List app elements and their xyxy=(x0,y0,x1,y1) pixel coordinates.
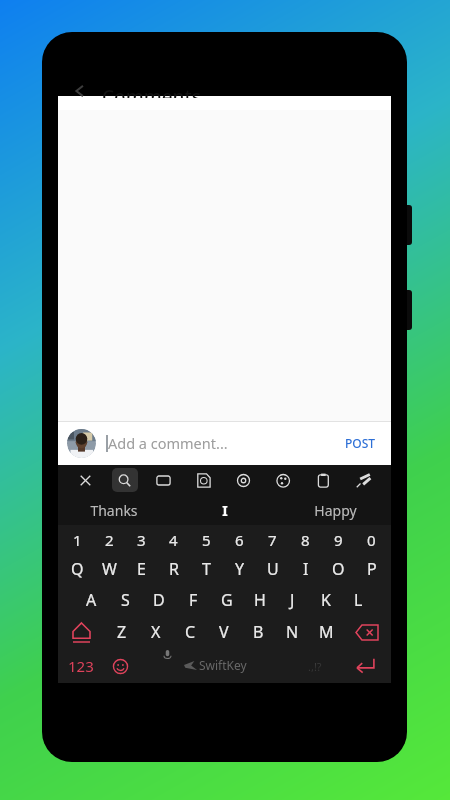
button[interactable]: F xyxy=(176,584,210,615)
staticText: 3 xyxy=(137,530,146,550)
staticText: L xyxy=(354,589,363,611)
button[interactable]: Settings xyxy=(223,465,263,495)
button[interactable]: 6 xyxy=(223,527,256,553)
button[interactable]: Happy xyxy=(280,495,391,525)
button[interactable]: B xyxy=(241,615,275,649)
staticText: J xyxy=(290,589,295,611)
button[interactable]: I xyxy=(289,553,322,584)
button[interactable]: Clipboard xyxy=(303,465,343,495)
button[interactable]: C xyxy=(173,615,207,649)
staticText: I xyxy=(222,501,228,520)
button[interactable]: Stickers xyxy=(183,465,223,495)
button[interactable]: 5 xyxy=(190,527,223,553)
button[interactable]: Search xyxy=(105,465,144,495)
staticText: U xyxy=(267,558,279,580)
staticText: S xyxy=(121,589,130,611)
staticText: R xyxy=(169,558,179,580)
staticText: Thanks xyxy=(90,501,138,520)
button[interactable]: I xyxy=(169,495,280,525)
staticText: K xyxy=(321,589,331,611)
staticText: E xyxy=(137,558,146,580)
staticText: 2 xyxy=(105,530,114,550)
button[interactable]: Space xyxy=(137,649,293,683)
button[interactable]: Shift xyxy=(58,615,105,649)
button[interactable]: Q xyxy=(61,553,93,584)
button[interactable]: E xyxy=(125,553,157,584)
staticText: 6 xyxy=(235,530,244,550)
button[interactable]: Y xyxy=(223,553,256,584)
staticText: POST xyxy=(345,435,376,451)
button[interactable]: V xyxy=(207,615,241,649)
button[interactable]: Thanks xyxy=(58,495,169,525)
button[interactable]: Backspace xyxy=(343,615,391,649)
button[interactable]: 3 xyxy=(125,527,157,553)
staticText: I xyxy=(303,558,309,580)
staticText: X xyxy=(151,621,161,643)
button[interactable]: R xyxy=(157,553,190,584)
staticText: 4 xyxy=(169,530,178,550)
staticText: D xyxy=(153,589,165,611)
staticText: H xyxy=(254,589,266,611)
staticText: Add a comment... xyxy=(108,433,228,453)
staticText: O xyxy=(332,558,345,580)
button[interactable]: Themes xyxy=(263,465,303,495)
button[interactable]: G xyxy=(210,584,243,615)
staticText: SwiftKey xyxy=(199,657,247,673)
staticText: M xyxy=(319,621,334,643)
button[interactable]: P xyxy=(355,553,388,584)
button[interactable]: O xyxy=(322,553,355,584)
button[interactable]: W xyxy=(93,553,125,584)
staticText: G xyxy=(221,589,233,611)
button[interactable]: Pin xyxy=(343,465,383,495)
staticText: 7 xyxy=(268,530,277,550)
staticText: 123 xyxy=(68,656,94,676)
staticText: Q xyxy=(71,558,84,580)
button[interactable]: 8 xyxy=(289,527,322,553)
button[interactable]: M xyxy=(309,615,343,649)
staticText: Z xyxy=(117,621,127,643)
button[interactable]: 4 xyxy=(157,527,190,553)
button[interactable]: 1 xyxy=(61,527,93,553)
button[interactable]: N xyxy=(275,615,309,649)
button[interactable]: L xyxy=(342,584,375,615)
button[interactable]: 0 xyxy=(355,527,388,553)
button[interactable]: Z xyxy=(105,615,139,649)
staticText: 5 xyxy=(202,530,211,550)
button[interactable]: U xyxy=(256,553,289,584)
staticText: 0 xyxy=(367,530,376,550)
button[interactable]: GIF xyxy=(144,465,183,495)
staticText: Y xyxy=(235,558,245,580)
staticText: V xyxy=(219,621,229,643)
button[interactable]: 2 xyxy=(93,527,125,553)
staticText: F xyxy=(189,589,198,611)
button[interactable]: H xyxy=(243,584,276,615)
staticText: Comments xyxy=(102,84,201,98)
staticText: 1 xyxy=(73,530,82,550)
button[interactable]: POST xyxy=(339,429,382,457)
button[interactable]: 123 xyxy=(58,649,103,683)
staticText: Happy xyxy=(314,501,357,520)
button[interactable]: Enter xyxy=(337,649,391,683)
staticText: 9 xyxy=(334,530,343,550)
button[interactable]: Back xyxy=(58,84,102,98)
staticText: .,!? xyxy=(308,659,322,674)
button[interactable]: Emoji xyxy=(103,649,137,683)
button[interactable]: 7 xyxy=(256,527,289,553)
staticText: A xyxy=(86,589,97,611)
button[interactable]: Profile xyxy=(67,429,96,458)
staticText: C xyxy=(185,621,196,643)
button[interactable]: A xyxy=(74,584,108,615)
button[interactable]: 9 xyxy=(322,527,355,553)
button[interactable]: S xyxy=(108,584,142,615)
button[interactable]: Add a comment... xyxy=(106,421,339,465)
button[interactable]: Close xyxy=(66,465,105,495)
button[interactable]: J xyxy=(276,584,309,615)
button[interactable]: K xyxy=(309,584,342,615)
staticText: 8 xyxy=(301,530,310,550)
button[interactable]: X xyxy=(139,615,173,649)
staticText: T xyxy=(202,558,211,580)
staticText: N xyxy=(286,621,299,643)
button[interactable]: T xyxy=(190,553,223,584)
button[interactable]: D xyxy=(142,584,176,615)
